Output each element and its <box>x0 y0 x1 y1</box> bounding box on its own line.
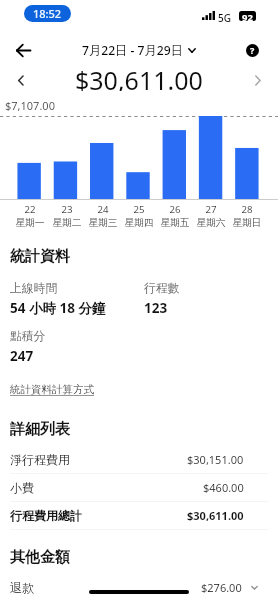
staticText: 上線時間 <box>10 281 58 296</box>
staticText: 24 <box>97 203 109 216</box>
staticText: 星期一 <box>15 217 45 229</box>
staticText: $276.00 <box>201 580 242 595</box>
staticText: 淨行程費用 <box>10 452 70 467</box>
staticText: 27 <box>205 203 217 216</box>
staticText: 其他金額 <box>10 548 70 567</box>
staticText: $460.00 <box>203 480 244 495</box>
staticText: $30,611.00 <box>187 508 244 523</box>
staticText: 247 <box>10 347 34 365</box>
staticText: 星期三 <box>88 217 118 229</box>
staticText: $7,107.00 <box>5 98 55 113</box>
button[interactable]: 退款 <box>10 575 259 599</box>
button[interactable]: Back <box>8 35 38 65</box>
staticText: 星期二 <box>52 217 82 229</box>
staticText: ? <box>250 44 255 56</box>
button[interactable]: Previous week <box>10 70 30 90</box>
staticText: 統計資料 <box>10 247 70 266</box>
staticText: 統計資料計算方式 <box>10 383 94 396</box>
staticText: 22 <box>24 203 36 216</box>
staticText: 25 <box>133 203 145 216</box>
staticText: 54 小時 18 分鐘 <box>10 299 106 317</box>
staticText: 5G <box>218 11 231 25</box>
staticText: 星期五 <box>160 217 190 229</box>
staticText: 23 <box>61 203 73 216</box>
button[interactable]: Next week <box>247 70 267 90</box>
staticText: 小費 <box>10 480 34 495</box>
staticText: 行程費用總計 <box>10 508 82 523</box>
button[interactable]: 7月22日 - 7月29日 <box>78 38 200 63</box>
staticText: 行程數 <box>144 281 180 296</box>
staticText: 92 <box>242 11 253 21</box>
staticText: 詳細列表 <box>10 420 70 439</box>
staticText: 28 <box>241 203 253 216</box>
staticText: 星期四 <box>124 217 154 229</box>
staticText: 星期六 <box>196 217 226 229</box>
staticText: $30,611.00 <box>75 63 203 91</box>
staticText: 26 <box>169 203 181 216</box>
button[interactable]: 統計資料計算方式 <box>10 383 94 396</box>
staticText: 點積分 <box>10 329 46 344</box>
staticText: 退款 <box>10 580 34 595</box>
staticText: 星期日 <box>232 217 262 229</box>
staticText: 18:52 <box>33 6 62 21</box>
staticText: 123 <box>144 299 168 317</box>
staticText: 7月22日 - 7月29日 <box>82 42 183 59</box>
staticText: $30,151.00 <box>187 452 244 467</box>
button[interactable]: Help <box>240 38 264 62</box>
